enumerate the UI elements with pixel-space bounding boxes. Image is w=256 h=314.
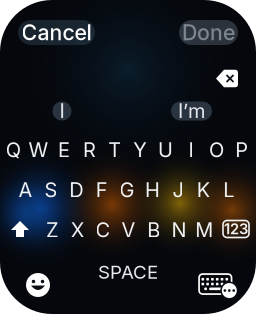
staticText: N	[171, 218, 186, 242]
button[interactable]: A	[13, 174, 38, 206]
staticText: B	[147, 218, 160, 242]
button[interactable]: C	[91, 214, 116, 246]
button[interactable]: X	[65, 214, 90, 246]
staticText: Cancel	[21, 20, 91, 45]
staticText: F	[96, 178, 108, 202]
staticText: SPACE	[98, 261, 158, 283]
staticText: O	[209, 138, 224, 162]
button[interactable]: Emoji	[26, 273, 50, 297]
staticText: Q	[6, 138, 21, 162]
button[interactable]: P	[229, 134, 254, 166]
button[interactable]: Keyboard options	[198, 271, 240, 303]
button[interactable]: Cancel	[18, 20, 95, 45]
staticText: P	[235, 138, 248, 162]
button[interactable]: K	[191, 174, 216, 206]
button[interactable]: Y	[128, 134, 153, 166]
staticText: C	[96, 218, 111, 242]
button[interactable]: SPACE	[88, 259, 168, 285]
staticText: X	[71, 218, 85, 242]
button[interactable]: R	[77, 134, 102, 166]
button[interactable]: V	[116, 214, 141, 246]
staticText: E	[58, 138, 70, 162]
staticText: 123	[224, 220, 248, 238]
staticText: V	[121, 218, 135, 242]
button[interactable]: Q	[1, 134, 26, 166]
staticText: W	[29, 138, 49, 162]
button[interactable]: T	[102, 134, 127, 166]
button[interactable]: J	[165, 174, 190, 206]
button[interactable]: M	[192, 214, 217, 246]
staticText: S	[44, 178, 57, 202]
button[interactable]: S	[38, 174, 63, 206]
button[interactable]: F	[89, 174, 114, 206]
button[interactable]: I	[178, 134, 203, 166]
button[interactable]: G	[115, 174, 140, 206]
button[interactable]: I’m	[171, 101, 212, 120]
staticText: M	[195, 218, 213, 242]
staticText: K	[197, 178, 210, 202]
button[interactable]: W	[26, 134, 51, 166]
staticText: I	[188, 138, 193, 162]
staticText: H	[145, 178, 160, 202]
button[interactable]: Shift	[6, 215, 34, 243]
button[interactable]: Delete	[212, 65, 242, 91]
staticText: I’m	[178, 99, 205, 123]
button[interactable]: D	[64, 174, 89, 206]
staticText: U	[158, 138, 173, 162]
staticText: L	[223, 178, 234, 202]
staticText: Done	[182, 20, 235, 45]
staticText: G	[120, 178, 135, 202]
button[interactable]: Done	[179, 20, 238, 45]
button[interactable]: Z	[40, 214, 65, 246]
button[interactable]: I	[52, 101, 71, 120]
button[interactable]: L	[216, 174, 241, 206]
staticText: R	[83, 138, 96, 162]
button[interactable]: H	[140, 174, 165, 206]
staticText: D	[69, 178, 83, 202]
button[interactable]: 123	[223, 220, 249, 237]
staticText: I	[59, 99, 64, 123]
button[interactable]: B	[141, 214, 166, 246]
button[interactable]: O	[204, 134, 229, 166]
staticText: T	[108, 138, 121, 162]
staticText: J	[172, 178, 183, 202]
button[interactable]: U	[153, 134, 178, 166]
button[interactable]: N	[166, 214, 191, 246]
button[interactable]: E	[51, 134, 76, 166]
staticText: Z	[46, 218, 59, 242]
staticText: Y	[133, 138, 147, 162]
staticText: A	[18, 178, 32, 202]
